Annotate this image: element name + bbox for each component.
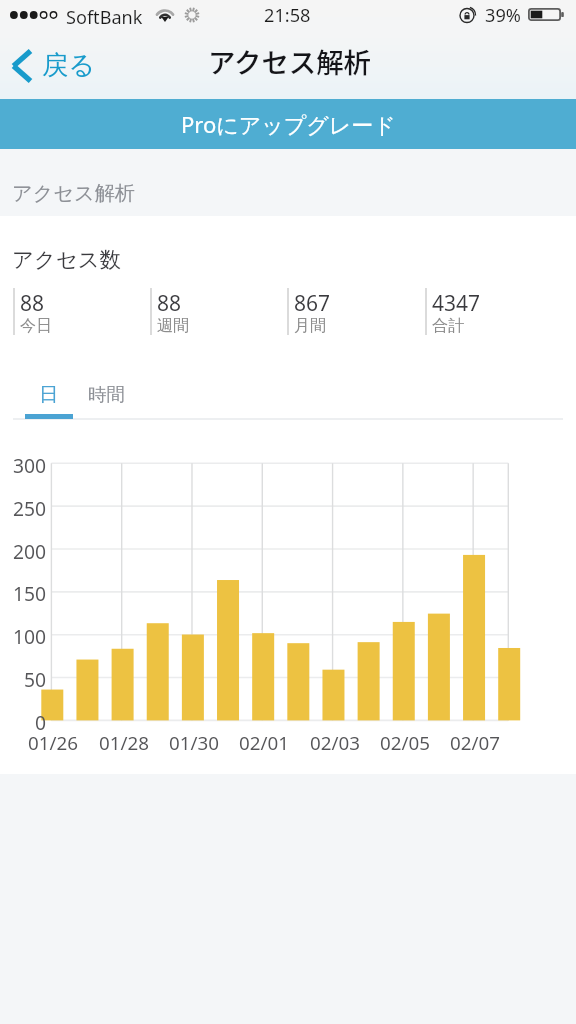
button[interactable]: 日 xyxy=(25,378,73,410)
staticText: 時間 xyxy=(88,383,125,406)
button[interactable]: 時間 xyxy=(82,378,130,410)
button[interactable]: Proにアップグレード xyxy=(0,99,576,149)
staticText: 100 xyxy=(13,623,47,649)
staticText: 4347 xyxy=(432,289,481,318)
staticText: 88 xyxy=(20,289,45,318)
staticText: 01/30 xyxy=(169,730,219,756)
staticText: 合計 xyxy=(432,316,464,334)
staticText: 50 xyxy=(24,666,47,692)
staticText: 01/28 xyxy=(99,730,149,756)
staticText: 今日 xyxy=(20,316,52,334)
staticText: 0 xyxy=(35,709,47,735)
staticText: 88 xyxy=(157,289,182,318)
button[interactable]: 戻る xyxy=(0,41,110,87)
staticText: 200 xyxy=(13,538,47,564)
staticText: 02/05 xyxy=(380,730,430,756)
staticText: アクセス解析 xyxy=(208,41,371,81)
staticText: アクセス数 xyxy=(12,246,121,273)
staticText: 21:58 xyxy=(264,3,311,28)
staticText: 150 xyxy=(13,580,47,606)
staticText: 日 xyxy=(39,382,59,407)
staticText: 戻る xyxy=(42,49,96,82)
staticText: 250 xyxy=(13,495,47,521)
staticText: 02/07 xyxy=(450,730,500,756)
staticText: アクセス解析 xyxy=(12,181,136,206)
staticText: 867 xyxy=(294,289,331,318)
staticText: 週間 xyxy=(157,316,189,334)
staticText: 39% xyxy=(485,3,521,28)
staticText: 01/26 xyxy=(28,730,78,756)
staticText: 月間 xyxy=(294,316,326,334)
staticText: 02/03 xyxy=(310,730,360,756)
staticText: 02/01 xyxy=(239,730,289,756)
staticText: SoftBank xyxy=(66,5,143,30)
staticText: 300 xyxy=(13,452,47,478)
staticText: Proにアップグレード xyxy=(181,109,396,139)
